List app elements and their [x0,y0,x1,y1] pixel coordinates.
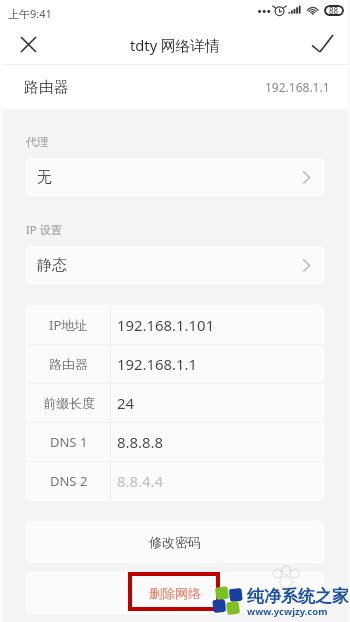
button[interactable]: DNS 2 [27,462,323,500]
staticText: 上午9:41 [8,6,52,21]
staticText: 静态 [37,256,67,275]
staticText: www.ycwjzy.com [247,605,328,618]
button[interactable]: 修改密码 [27,522,323,562]
staticText: 192.168.1.1 [265,79,330,95]
staticText: 88 [329,5,339,16]
staticText: 192.168.1.101 [117,315,215,335]
button[interactable]: 无 [27,159,323,195]
staticText: 路由器 [49,356,88,372]
staticText: 无 [37,168,52,187]
staticText: tdty 网络详情 [130,35,220,55]
button[interactable]: DNS 1 [27,423,323,461]
staticText: 192.168.1.1 [117,354,198,374]
staticText: 代理 [26,135,49,149]
staticText: IP 设置 [26,222,63,237]
button[interactable]: 删除网络 [27,573,323,613]
button[interactable]: Close [0,26,50,64]
button[interactable]: 前缀长度 [27,384,323,422]
staticText: 删除网络 [149,585,201,601]
button[interactable]: 静态 [27,247,323,283]
staticText: DNS 2 [50,472,88,490]
button[interactable]: IP地址 [27,306,323,344]
button[interactable]: 路由器 [27,345,323,383]
button[interactable]: Save [300,26,350,64]
staticText: 8.8.4.4 [117,471,164,491]
staticText: IP地址 [49,316,88,334]
staticText: 24 [117,393,135,413]
staticText: 前缀长度 [43,395,95,411]
staticText: 纯净系统之家 [247,586,349,607]
button[interactable]: 路由器 [0,65,350,109]
staticText: 修改密码 [149,534,201,550]
staticText: DNS 1 [50,433,88,451]
staticText: 路由器 [24,78,69,97]
staticText: 8.8.8.8 [117,432,164,452]
